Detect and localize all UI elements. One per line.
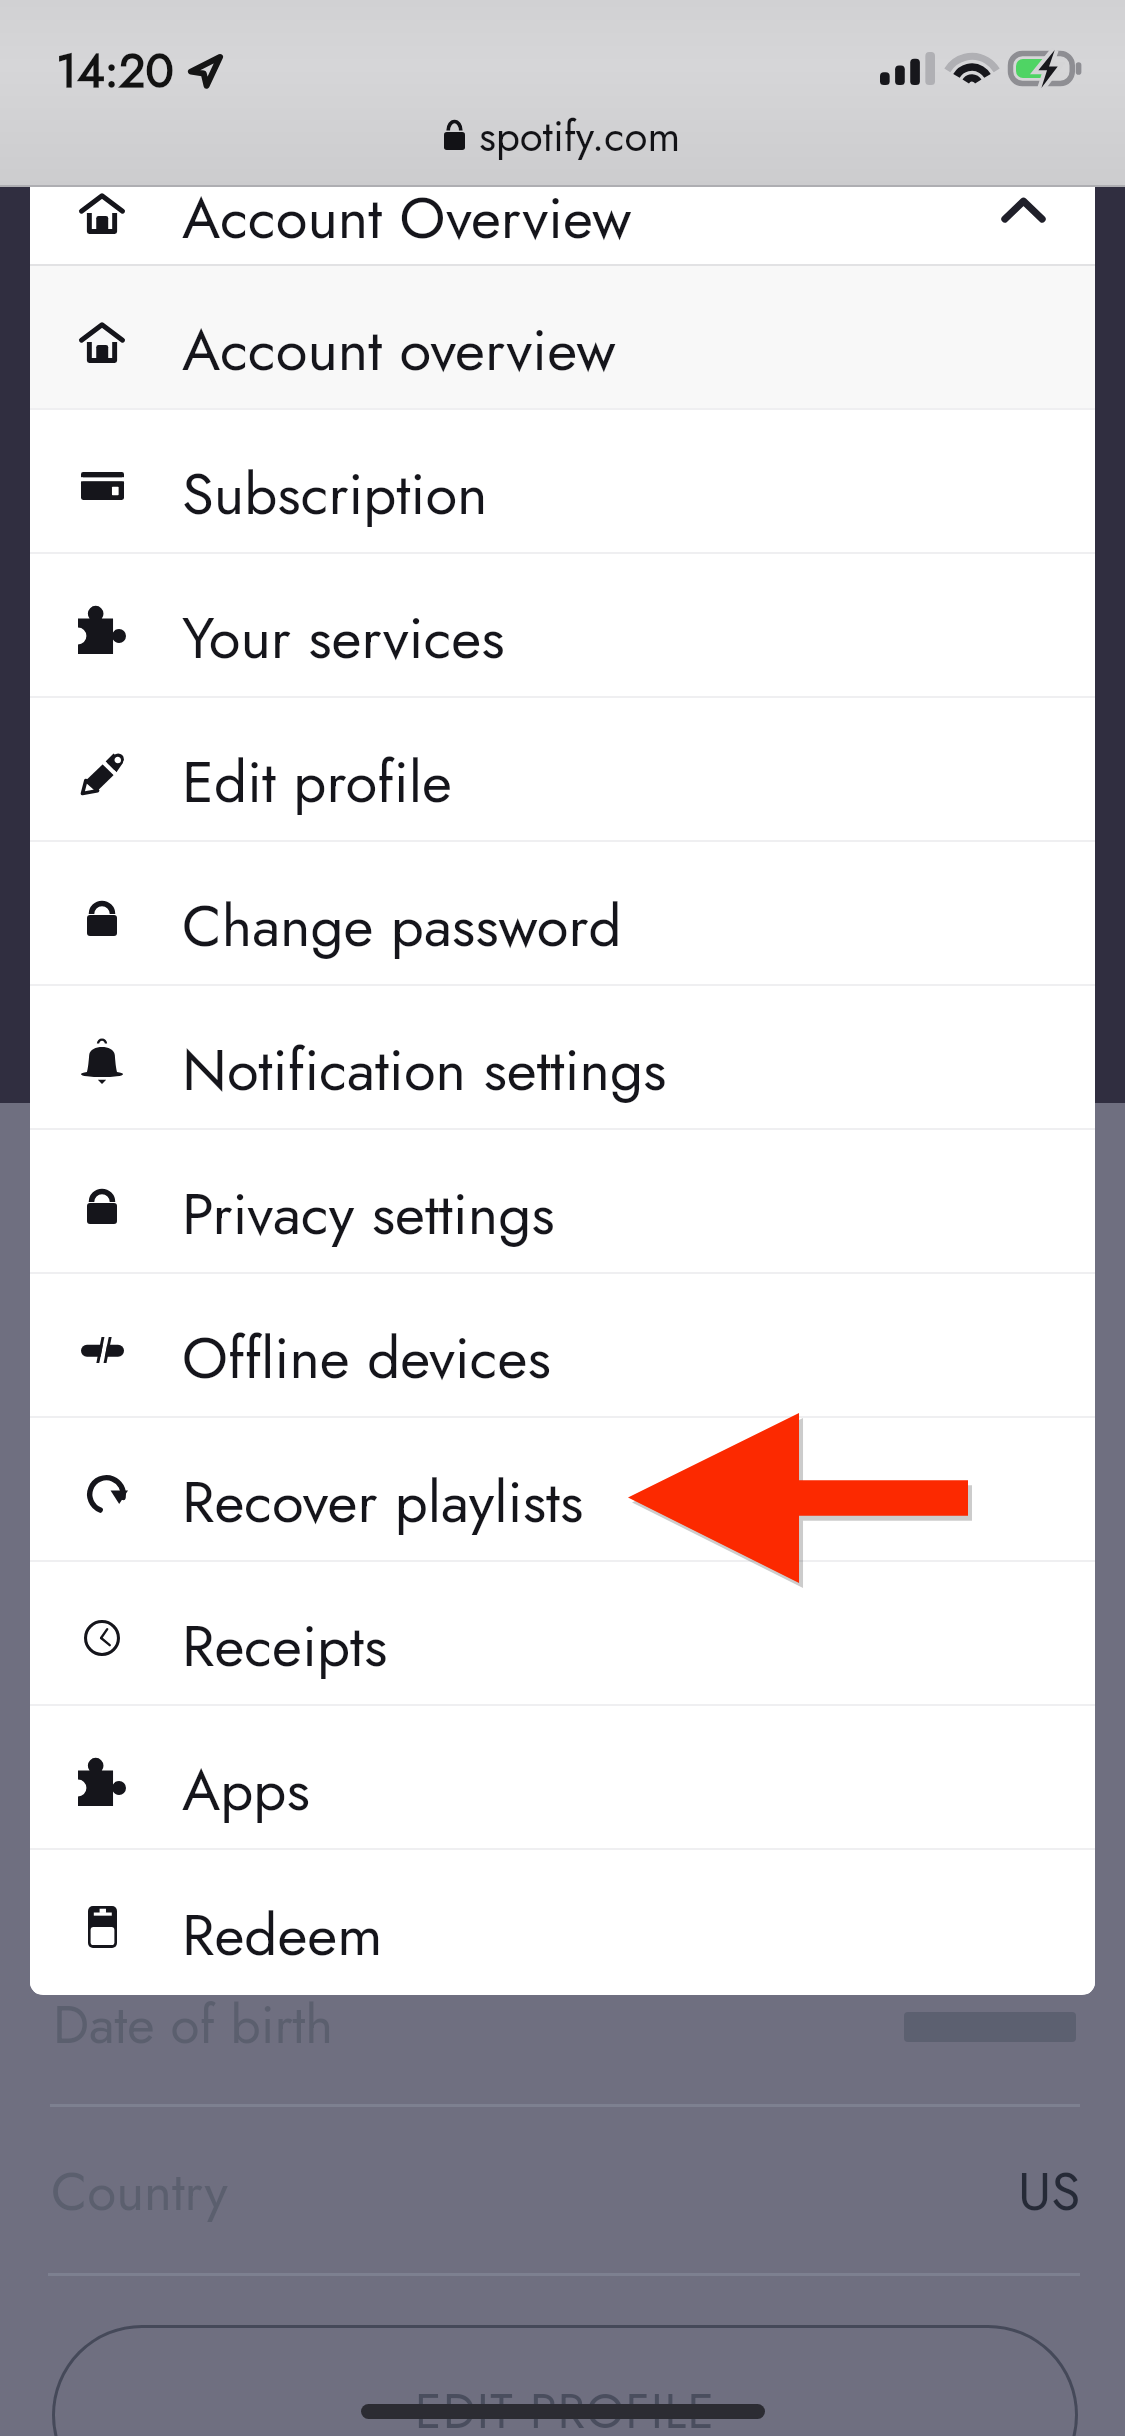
staticText: Redeem: [182, 1893, 383, 1977]
button[interactable]: Redeem: [30, 1850, 1095, 1994]
button[interactable]: Apps: [30, 1706, 1095, 1848]
staticText: Account overview: [182, 308, 616, 392]
staticText: Apps: [182, 1748, 310, 1832]
staticText: Offline devices: [182, 1316, 551, 1400]
staticText: Your services: [182, 596, 505, 680]
button[interactable]: Receipts: [30, 1562, 1095, 1704]
button[interactable]: Offline devices: [30, 1274, 1095, 1416]
staticText: Subscription: [182, 452, 488, 536]
staticText: Change password: [182, 884, 622, 968]
button[interactable]: EDIT PROFILE: [52, 2325, 1078, 2436]
button[interactable]: Account Overview: [30, 187, 1095, 264]
button[interactable]: Account overview: [30, 266, 1095, 408]
staticText: EDIT PROFILE: [415, 2377, 716, 2436]
staticText: spotify.com: [479, 106, 681, 167]
staticText: Recover playlists: [182, 1460, 584, 1544]
staticText: Edit profile: [182, 740, 452, 824]
button[interactable]: Your services: [30, 554, 1095, 696]
other: Annotation arrow pointing at Recover pla…: [628, 1413, 968, 1583]
staticText: Receipts: [182, 1604, 388, 1688]
staticText: Notification settings: [182, 1028, 667, 1112]
staticText: US: [1018, 2153, 1081, 2230]
staticText: Privacy settings: [182, 1172, 555, 1256]
button[interactable]: Change password: [30, 842, 1095, 984]
staticText: 14:20: [56, 37, 174, 105]
staticText: Account Overview: [182, 187, 632, 253]
button[interactable]: Notification settings: [30, 986, 1095, 1128]
button[interactable]: Subscription: [30, 410, 1095, 552]
staticText: Country: [51, 2153, 228, 2230]
button[interactable]: Recover playlists: [30, 1418, 1095, 1560]
button[interactable]: Edit profile: [30, 698, 1095, 840]
button[interactable]: Privacy settings: [30, 1130, 1095, 1272]
staticText: Date of birth: [53, 1986, 334, 2063]
